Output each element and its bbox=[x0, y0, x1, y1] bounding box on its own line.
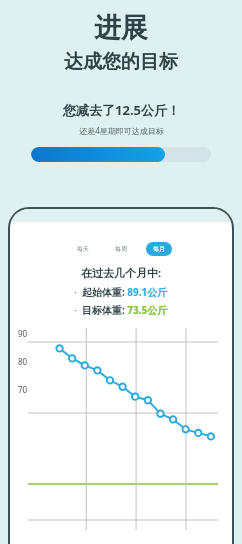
button[interactable]: 每天 bbox=[70, 242, 96, 256]
staticText: 80 bbox=[18, 356, 28, 367]
staticText: 每月 bbox=[153, 245, 165, 253]
staticText: 您减去了12.5公斤！ bbox=[63, 101, 180, 119]
staticText: 70 bbox=[18, 384, 28, 395]
staticText: 每天 bbox=[77, 245, 89, 253]
button[interactable]: 每月 bbox=[146, 242, 172, 256]
staticText: 还差4星期即可达成目标 bbox=[79, 125, 164, 136]
staticText: 90 bbox=[18, 328, 28, 339]
staticText: 每周 bbox=[115, 245, 127, 253]
staticText: · 起始体重: 89.1公斤 bbox=[74, 285, 168, 299]
button[interactable]: Goal progress bbox=[31, 147, 211, 162]
staticText: 在过去几个月中: bbox=[81, 265, 162, 280]
button[interactable]: 每周 bbox=[108, 242, 134, 256]
staticText: · 目标体重: 73.5公斤 bbox=[74, 303, 168, 317]
staticText: 达成您的目标 bbox=[64, 50, 178, 74]
staticText: 进展 bbox=[94, 11, 148, 45]
